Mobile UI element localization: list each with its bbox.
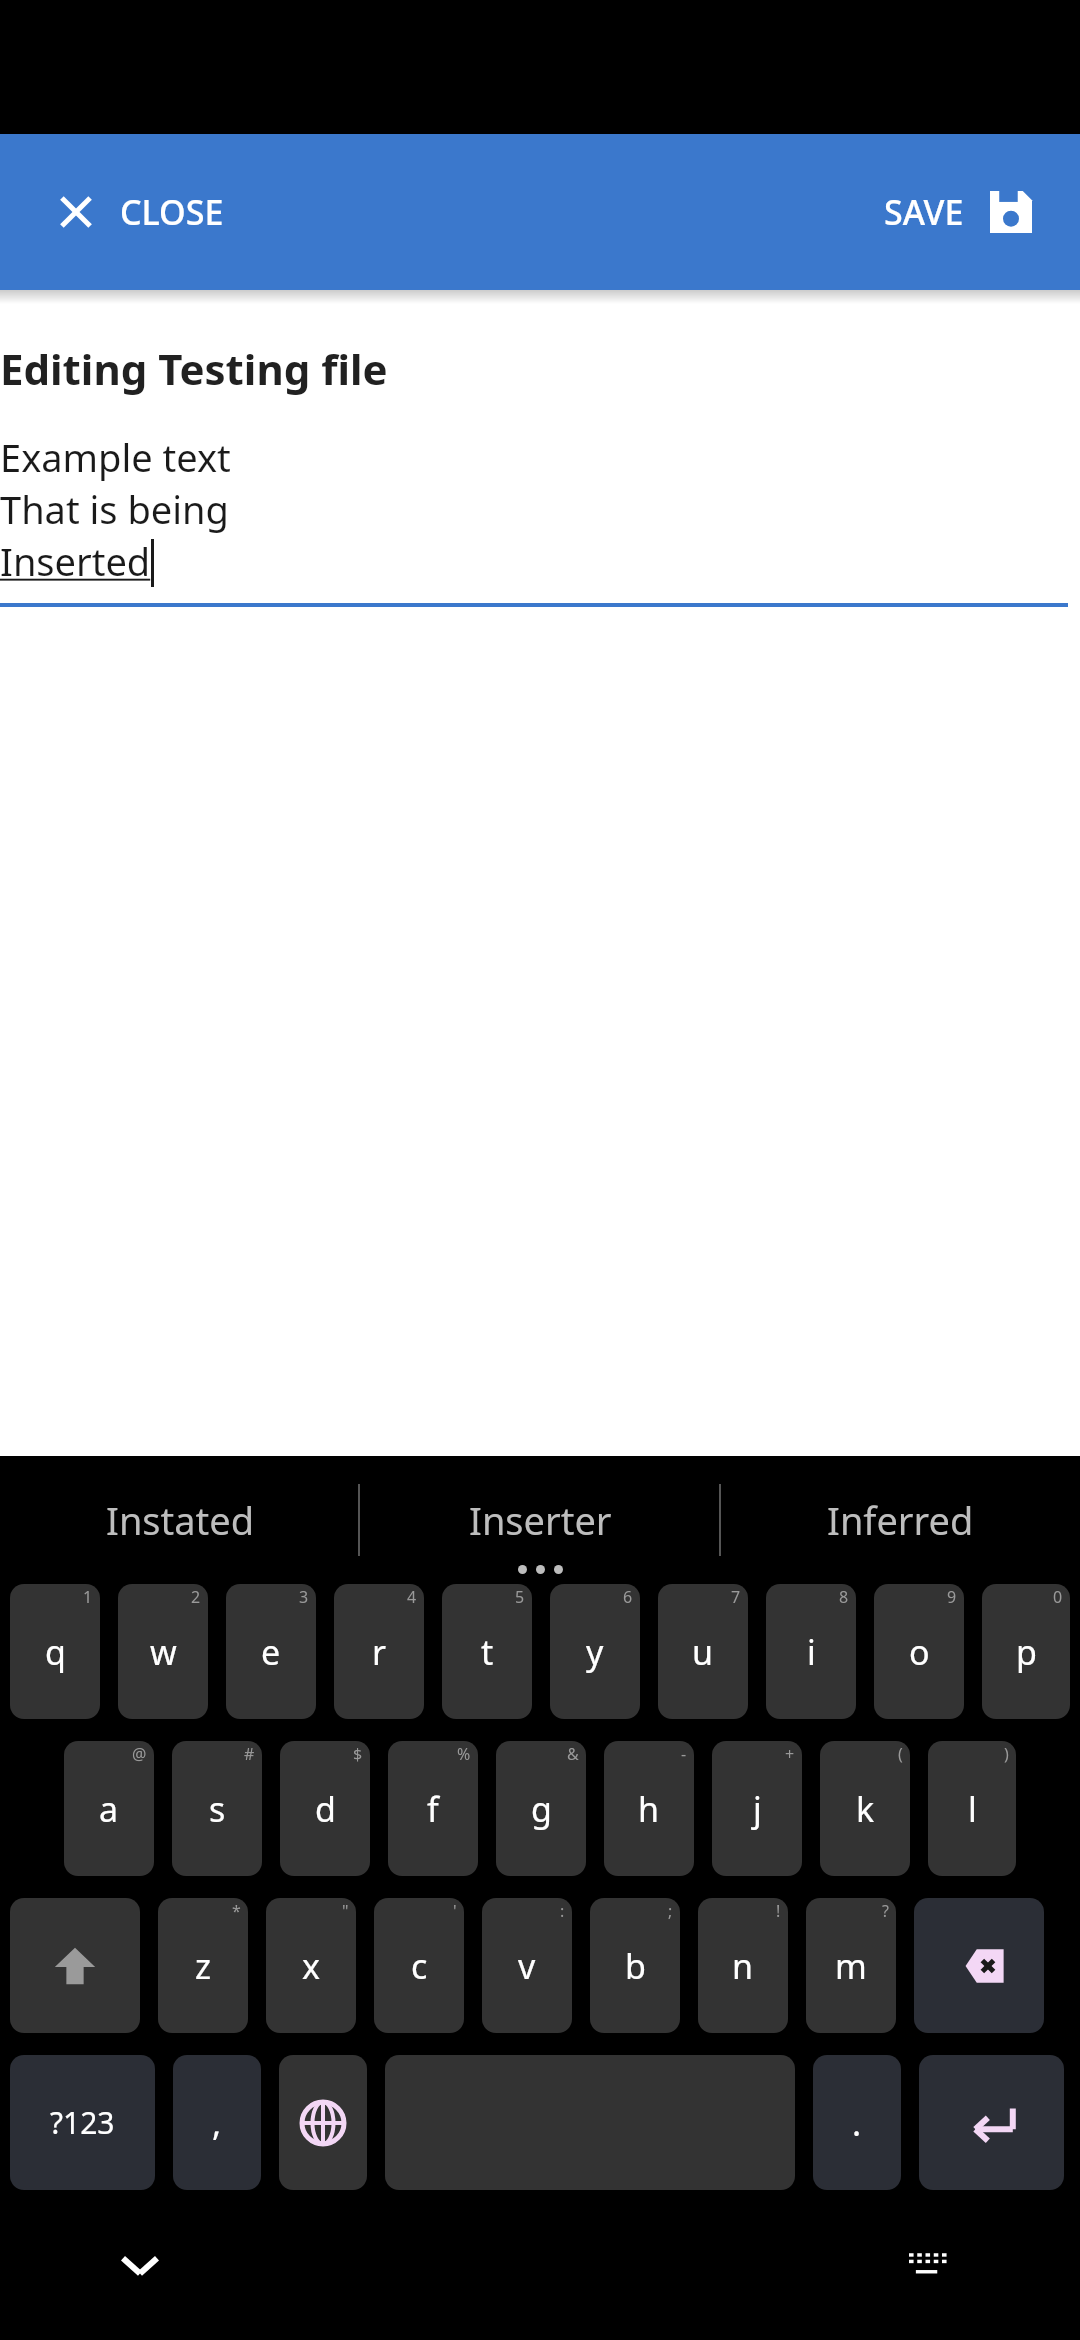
staticText: w	[150, 1629, 177, 1675]
button[interactable]: 8	[766, 1584, 856, 1719]
button[interactable]: $	[280, 1741, 370, 1876]
staticText: 3	[299, 1586, 309, 1608]
button[interactable]: ?	[806, 1898, 896, 2033]
button[interactable]: Backspace	[914, 1898, 1044, 2033]
staticText: i	[807, 1629, 816, 1675]
staticText: Inserter	[469, 1494, 612, 1546]
staticText: ,	[212, 2100, 222, 2146]
staticText: u	[692, 1629, 714, 1675]
button[interactable]: &	[496, 1741, 586, 1876]
button[interactable]: %	[388, 1741, 478, 1876]
button[interactable]: 2	[118, 1584, 208, 1719]
staticText: l	[968, 1786, 977, 1832]
staticText: n	[732, 1943, 754, 1989]
button[interactable]: .	[813, 2055, 901, 2190]
button[interactable]: )	[928, 1741, 1016, 1876]
staticText: Example text	[0, 431, 231, 483]
button[interactable]: Change language	[279, 2055, 367, 2190]
button[interactable]: 9	[874, 1584, 964, 1719]
staticText: +	[785, 1743, 795, 1765]
staticText: 9	[947, 1586, 957, 1608]
button[interactable]: Example text	[0, 431, 1080, 607]
button[interactable]: #	[172, 1741, 262, 1876]
staticText: g	[531, 1786, 552, 1832]
staticText: .	[852, 2100, 862, 2146]
button[interactable]: 0	[982, 1584, 1070, 1719]
button[interactable]: 3	[226, 1584, 316, 1719]
button[interactable]: +	[712, 1741, 802, 1876]
staticText: z	[195, 1943, 211, 1989]
staticText: o	[909, 1629, 930, 1675]
staticText: t	[481, 1629, 494, 1675]
button[interactable]: Instated	[0, 1456, 360, 1584]
staticText: r	[372, 1629, 387, 1675]
staticText: j	[753, 1786, 762, 1832]
button[interactable]: (	[820, 1741, 910, 1876]
button[interactable]: Hide keyboard	[110, 2235, 170, 2295]
button[interactable]: :	[482, 1898, 572, 2033]
staticText: !	[776, 1900, 781, 1922]
staticText: 8	[839, 1586, 849, 1608]
staticText: 1	[83, 1586, 93, 1608]
button[interactable]: Enter	[919, 2055, 1064, 2190]
button[interactable]: Shift	[10, 1898, 140, 2033]
staticText: y	[586, 1629, 604, 1675]
staticText: #	[244, 1743, 255, 1765]
staticText: e	[261, 1629, 281, 1675]
button[interactable]: 6	[550, 1584, 640, 1719]
staticText: q	[45, 1629, 66, 1675]
staticText: h	[638, 1786, 660, 1832]
button[interactable]: -	[604, 1741, 694, 1876]
staticText: 5	[515, 1586, 525, 1608]
staticText: $	[353, 1743, 363, 1765]
staticText: SAVE	[884, 189, 964, 235]
button[interactable]: 4	[334, 1584, 424, 1719]
button[interactable]: Inserter	[360, 1456, 720, 1584]
button[interactable]: ,	[173, 2055, 261, 2190]
staticText: ?	[882, 1900, 889, 1922]
button[interactable]: SAVE	[876, 179, 1040, 245]
staticText: x	[302, 1943, 320, 1989]
button[interactable]: 1	[10, 1584, 100, 1719]
button[interactable]: 7	[658, 1584, 748, 1719]
staticText: 7	[731, 1586, 741, 1608]
staticText: f	[427, 1786, 439, 1832]
button[interactable]: '	[374, 1898, 464, 2033]
staticText: Inserted	[0, 535, 151, 587]
button[interactable]: "	[266, 1898, 356, 2033]
staticText: ;	[668, 1900, 673, 1922]
button[interactable]: Inferred	[720, 1456, 1080, 1584]
staticText: 0	[1053, 1586, 1063, 1608]
staticText: a	[99, 1786, 119, 1832]
staticText: m	[835, 1943, 867, 1989]
staticText: Inferred	[827, 1494, 974, 1546]
staticText: b	[625, 1943, 646, 1989]
button[interactable]: @	[64, 1741, 154, 1876]
staticText: s	[209, 1786, 226, 1832]
staticText: &	[567, 1743, 579, 1765]
staticText: -	[681, 1743, 687, 1765]
staticText: :	[560, 1900, 565, 1922]
staticText: *	[232, 1900, 241, 1922]
button[interactable]: !	[698, 1898, 788, 2033]
staticText: ?123	[50, 2102, 115, 2143]
button[interactable]: 5	[442, 1584, 532, 1719]
button[interactable]: ;	[590, 1898, 680, 2033]
staticText: 6	[623, 1586, 633, 1608]
button[interactable]: CLOSE	[46, 179, 232, 245]
staticText: '	[453, 1900, 457, 1922]
button[interactable]: ?123	[10, 2055, 155, 2190]
staticText: (	[898, 1743, 903, 1765]
staticText: "	[342, 1900, 349, 1922]
staticText: @	[132, 1743, 147, 1765]
button[interactable]: *	[158, 1898, 248, 2033]
staticText: p	[1016, 1629, 1037, 1675]
staticText: That is being	[0, 483, 229, 535]
staticText: d	[315, 1786, 336, 1832]
staticText: Editing Testing file	[0, 340, 388, 397]
staticText: CLOSE	[120, 189, 224, 235]
staticText: c	[411, 1943, 428, 1989]
button[interactable]: Switch keyboard	[900, 2235, 960, 2295]
staticText: 4	[407, 1586, 417, 1608]
